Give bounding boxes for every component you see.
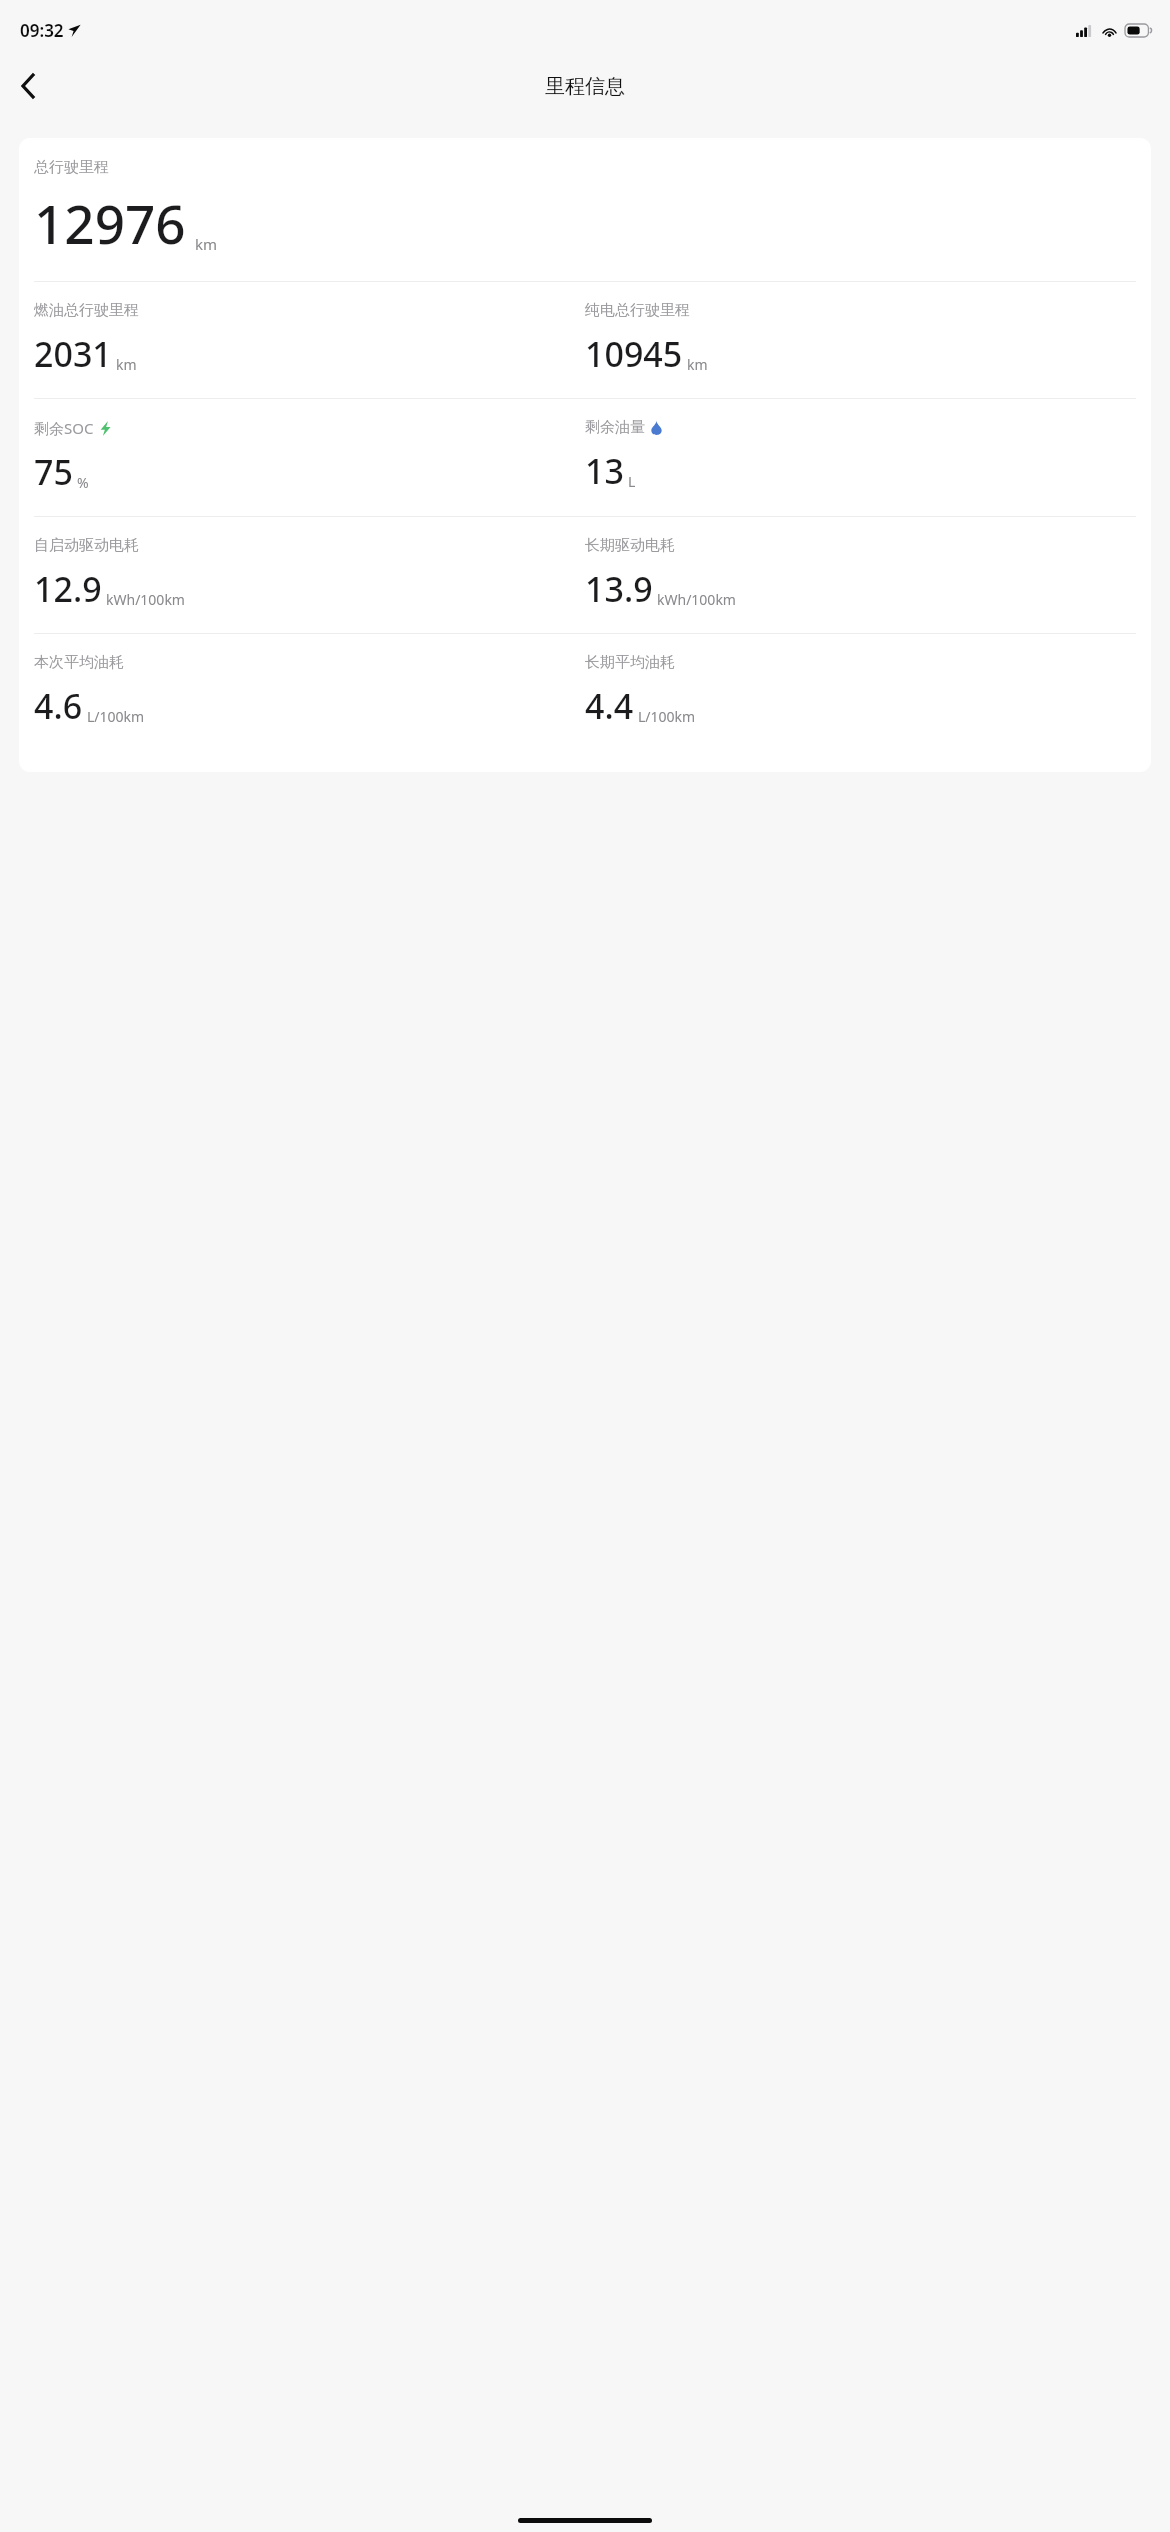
staticText: 10945 xyxy=(585,331,683,377)
button[interactable]: 纯电总行驶里程 xyxy=(585,282,1136,398)
button[interactable]: 返回 xyxy=(4,62,52,110)
staticText: 总行驶里程 xyxy=(34,158,109,177)
staticText: 纯电总行驶里程 xyxy=(585,301,690,320)
staticText: L/100km xyxy=(87,707,145,726)
staticText: 13 xyxy=(585,448,624,494)
staticText: 自启动驱动电耗 xyxy=(34,536,139,555)
button[interactable]: 长期平均油耗 xyxy=(585,634,1136,750)
staticText: 13.9 xyxy=(585,566,653,612)
button[interactable]: 本次平均油耗 xyxy=(34,634,585,750)
staticText: % xyxy=(77,473,89,492)
staticText: 75 xyxy=(34,449,73,495)
staticText: 本次平均油耗 xyxy=(34,653,124,672)
staticText: L/100km xyxy=(638,707,696,726)
staticText: 长期驱动电耗 xyxy=(585,536,675,555)
staticText: km xyxy=(116,355,137,374)
staticText: kWh/100km xyxy=(106,590,185,609)
staticText: kWh/100km xyxy=(657,590,736,609)
staticText: 4.4 xyxy=(585,683,634,729)
staticText: km xyxy=(687,355,708,374)
staticText: 剩余油量 xyxy=(585,418,645,437)
button[interactable]: 剩余SOC xyxy=(34,399,585,516)
button[interactable]: 燃油总行驶里程 xyxy=(34,282,585,398)
button[interactable]: 剩余油量 xyxy=(585,399,1136,515)
staticText: km xyxy=(195,234,218,254)
staticText: 长期平均油耗 xyxy=(585,653,675,672)
button[interactable]: 自启动驱动电耗 xyxy=(34,517,585,633)
staticText: 12.9 xyxy=(34,566,102,612)
staticText: 09:32 xyxy=(20,19,64,42)
staticText: 里程信息 xyxy=(545,74,625,99)
staticText: 4.6 xyxy=(34,683,83,729)
staticText: 12976 xyxy=(34,187,186,259)
button[interactable]: 长期驱动电耗 xyxy=(585,517,1136,633)
staticText: 燃油总行驶里程 xyxy=(34,301,139,320)
staticText: 剩余SOC xyxy=(34,418,94,438)
staticText: L xyxy=(628,472,636,491)
staticText: 2031 xyxy=(34,331,112,377)
